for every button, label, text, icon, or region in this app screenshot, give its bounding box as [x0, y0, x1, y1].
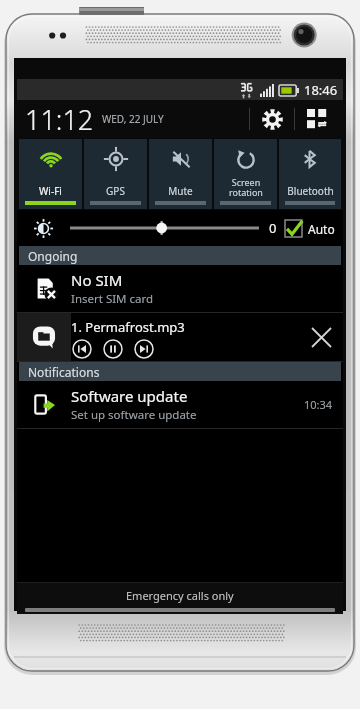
button[interactable]: Settings [250, 100, 294, 138]
button[interactable]: No SIM [17, 265, 343, 312]
staticText: Insert SIM card [71, 291, 154, 307]
staticText: No SIM [71, 270, 123, 290]
staticText: Auto [308, 221, 335, 237]
button[interactable]: Wi-Fi [19, 139, 82, 209]
button[interactable]: Bluetooth [279, 139, 341, 209]
staticText: Notifications [28, 364, 100, 380]
button[interactable]: Previous [71, 338, 92, 359]
button[interactable]: Brightness [17, 210, 343, 246]
staticText: Software update [71, 386, 188, 406]
staticText: 18:46 [304, 81, 338, 99]
staticText: Bluetooth [287, 184, 334, 198]
button[interactable]: GPS [84, 139, 147, 209]
staticText: Mute [168, 184, 193, 198]
button[interactable]: Screen rotation [214, 139, 277, 209]
staticText: Emergency calls only [126, 588, 234, 603]
button[interactable]: Pause [102, 338, 123, 359]
staticText: 1. Permafrost.mp3 [71, 318, 185, 336]
staticText: GPS [106, 184, 125, 198]
button[interactable]: Next [133, 338, 154, 359]
button[interactable]: Mute [149, 139, 212, 209]
staticText: Set up software update [71, 407, 197, 423]
staticText: 11:12 [25, 101, 94, 138]
button[interactable]: Music player [17, 313, 71, 361]
staticText: 0 [269, 219, 277, 237]
staticText: 10:34 [304, 397, 333, 412]
button[interactable]: Dismiss [299, 313, 343, 361]
staticText: Ongoing [28, 248, 78, 264]
button[interactable]: Close notification shade [17, 582, 343, 614]
button[interactable]: Brightness [70, 213, 259, 243]
button[interactable]: Auto [284, 219, 335, 238]
button[interactable]: Edit quick settings [295, 100, 339, 138]
button[interactable]: Software update [17, 381, 343, 428]
staticText: Wi-Fi [39, 184, 62, 198]
staticText: Screen rotation [229, 176, 263, 198]
staticText: WED, 22 JULY [102, 112, 164, 126]
